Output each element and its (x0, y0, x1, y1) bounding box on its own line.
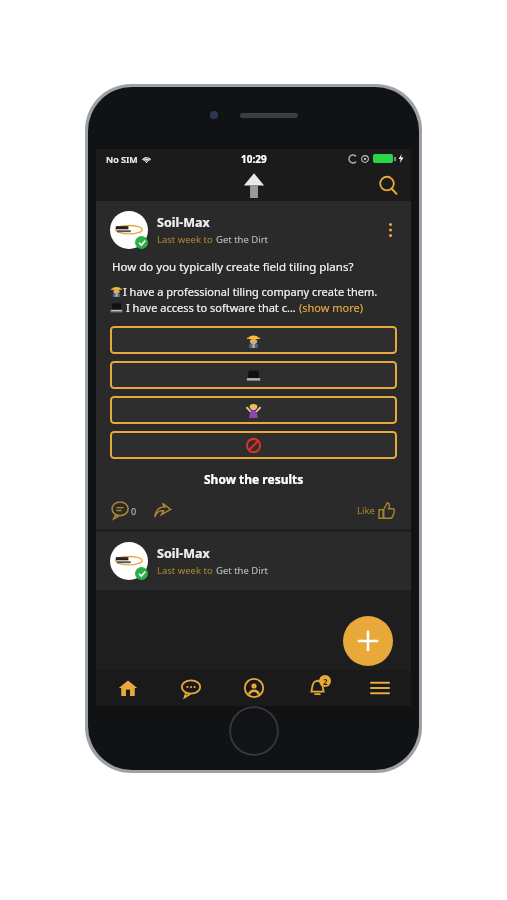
button[interactable] (110, 361, 397, 389)
button[interactable]: Menu (348, 670, 411, 706)
staticText: 2 (323, 676, 328, 687)
staticText: 0 (131, 505, 137, 517)
staticText: Like (357, 504, 375, 517)
button[interactable]: Like (355, 500, 397, 521)
staticText: I have a professional tiling company cre… (123, 284, 378, 299)
button[interactable]: More options (379, 219, 401, 241)
button[interactable] (110, 431, 397, 459)
button[interactable]: 0 (110, 500, 139, 521)
button[interactable]: Notifications (285, 670, 348, 706)
staticText: I have access to software that c... (126, 300, 296, 315)
button[interactable]: (show more) (299, 300, 364, 315)
staticText: Soil-Max (157, 545, 210, 562)
button[interactable]: Share (151, 499, 173, 521)
staticText: 10:29 (241, 152, 267, 166)
staticText: Last week to (157, 233, 216, 246)
staticText: How do you typically create field tiling… (112, 259, 354, 275)
button[interactable] (110, 326, 397, 354)
button[interactable]: Profile (222, 670, 285, 706)
button[interactable]: Scroll to top (237, 168, 271, 201)
staticText: Last week to (157, 564, 216, 577)
staticText: Get the Dirt (216, 233, 269, 246)
button[interactable]: Messages (159, 670, 222, 706)
button[interactable] (110, 396, 397, 424)
button[interactable]: Show the results (96, 471, 411, 487)
staticText: Show the results (204, 471, 304, 487)
button[interactable]: Search (373, 170, 403, 200)
staticText: No SIM (106, 153, 138, 165)
button[interactable]: Create new post (343, 616, 393, 666)
button[interactable]: Home (96, 670, 159, 706)
staticText: Get the Dirt (216, 564, 269, 577)
staticText: Soil-Max (157, 214, 210, 231)
